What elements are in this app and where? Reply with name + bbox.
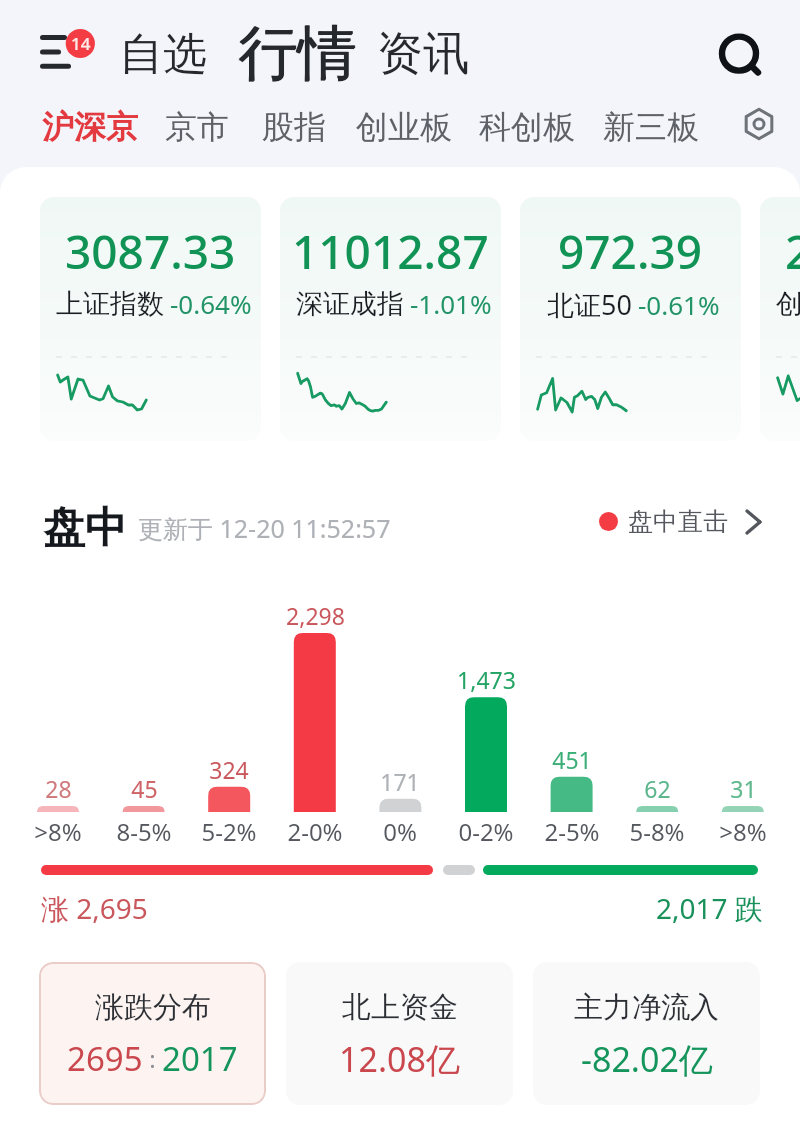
staticText: 0-2% <box>458 815 514 848</box>
button[interactable]: Market settings <box>736 101 782 147</box>
staticText: >8% <box>719 815 767 848</box>
staticText: 盘中 <box>43 502 127 555</box>
button[interactable]: 盘中直击 <box>593 501 769 542</box>
button[interactable]: 京市 <box>155 97 239 157</box>
button[interactable]: 股指 <box>252 97 336 157</box>
staticText: 股指 <box>262 107 326 147</box>
staticText: 涨 2,695 <box>41 889 148 927</box>
staticText: 自选 <box>119 27 207 82</box>
button[interactable]: 972.39 <box>520 197 741 441</box>
staticText: 科创板 <box>479 107 575 147</box>
staticText: >8% <box>34 815 82 848</box>
staticText: 2,017 跌 <box>656 889 763 927</box>
staticText: 972.39 <box>558 220 703 283</box>
staticText: -0.64% <box>170 286 252 321</box>
staticText: -0.61% <box>638 287 720 322</box>
staticText: 2017 <box>162 1036 238 1081</box>
button[interactable]: 行情 <box>230 8 364 98</box>
button[interactable]: 自选 <box>111 19 215 90</box>
staticText: 3087.33 <box>65 220 236 283</box>
staticText: 创业板指 <box>776 287 800 321</box>
button[interactable]: 盘中 <box>41 500 129 557</box>
button[interactable]: 科创板 <box>469 97 585 157</box>
staticText: 新三板 <box>603 107 699 147</box>
staticText: 1,473 <box>457 664 516 695</box>
staticText: 2,298 <box>286 600 345 631</box>
button[interactable]: 沪深京 <box>32 97 148 157</box>
staticText: 0% <box>383 815 417 848</box>
staticText: 451 <box>552 744 592 775</box>
staticText: 北证50 <box>547 286 632 323</box>
staticText: -82.02亿 <box>581 1036 713 1082</box>
button[interactable]: 北上资金 <box>286 962 513 1105</box>
staticText: 14 <box>71 32 91 55</box>
staticText: 主力净流入 <box>574 989 719 1026</box>
staticText: 盘中直击 <box>628 506 728 537</box>
staticText: 上证指数 <box>56 287 164 321</box>
staticText: : <box>143 1042 162 1075</box>
staticText: 5-2% <box>201 815 257 848</box>
staticText: 5-8% <box>629 815 685 848</box>
button[interactable]: 创业板 <box>346 97 462 157</box>
staticText: 更新于 12-20 11:52:57 <box>138 511 391 545</box>
staticText: 62 <box>644 773 671 804</box>
button[interactable]: Menu <box>26 24 102 78</box>
button[interactable]: 新三板 <box>593 97 709 157</box>
staticText: 2695 <box>67 1036 143 1081</box>
staticText: 京市 <box>165 107 229 147</box>
staticText: 324 <box>209 754 249 785</box>
button[interactable]: 涨跌分布 <box>39 962 266 1105</box>
staticText: 资讯 <box>377 25 469 83</box>
button[interactable]: 2134.56 <box>760 197 800 441</box>
staticText: 沪深京 <box>42 107 138 147</box>
staticText: 涨跌分布 <box>95 989 211 1026</box>
button[interactable]: Search <box>708 20 770 82</box>
staticText: 31 <box>730 773 757 804</box>
staticText: 8-5% <box>116 815 172 848</box>
staticText: 45 <box>131 773 158 804</box>
staticText: 2-5% <box>544 815 600 848</box>
staticText: 北上资金 <box>342 989 458 1026</box>
staticText: 行情 <box>238 16 356 90</box>
staticText: 2134.56 <box>785 220 800 283</box>
button[interactable]: 3087.33 <box>40 197 261 441</box>
staticText: 深证成指 <box>296 287 404 321</box>
staticText: -1.01% <box>410 286 492 321</box>
staticText: 28 <box>45 773 72 804</box>
button[interactable]: 11012.87 <box>280 197 501 441</box>
button[interactable]: 资讯 <box>369 17 477 91</box>
staticText: 创业板 <box>356 107 452 147</box>
staticText: 171 <box>380 766 420 797</box>
staticText: 11012.87 <box>292 220 489 283</box>
button[interactable]: 主力净流入 <box>533 962 760 1105</box>
staticText: 2-0% <box>287 815 343 848</box>
staticText: 12.08亿 <box>339 1036 460 1082</box>
